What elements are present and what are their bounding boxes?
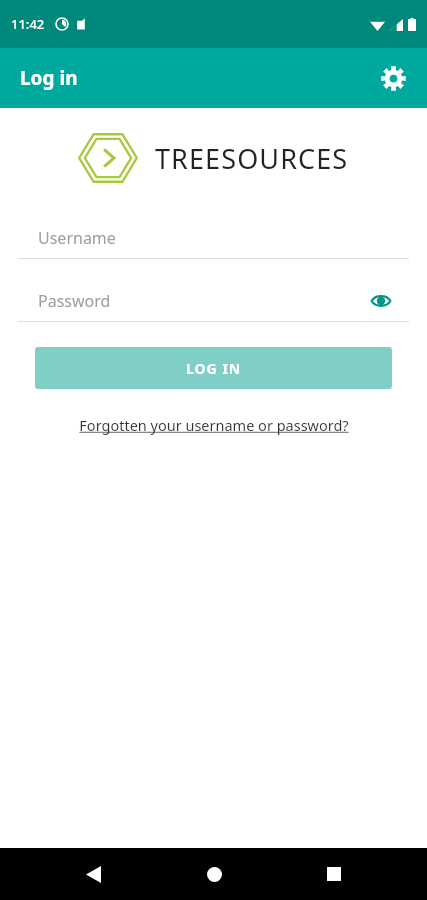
button[interactable]: LOG IN	[35, 347, 392, 389]
staticText: Log in	[20, 65, 78, 91]
staticText: Password	[38, 290, 111, 312]
button[interactable]: Back	[65, 848, 121, 900]
button[interactable]: Home	[186, 848, 242, 900]
staticText: Forgotten your username or password?	[79, 415, 349, 435]
button[interactable]: Username	[18, 218, 409, 259]
button[interactable]: Password	[18, 281, 409, 322]
button[interactable]: Forgotten your username or password?	[71, 411, 357, 439]
button[interactable]: Show password	[365, 285, 397, 317]
staticText: TREESOURCES	[155, 140, 349, 177]
staticText: 11:42	[11, 15, 45, 33]
staticText: LOG IN	[186, 359, 242, 378]
button[interactable]: Recent apps	[306, 848, 362, 900]
button[interactable]: Settings	[369, 54, 417, 102]
staticText: Username	[38, 227, 116, 249]
